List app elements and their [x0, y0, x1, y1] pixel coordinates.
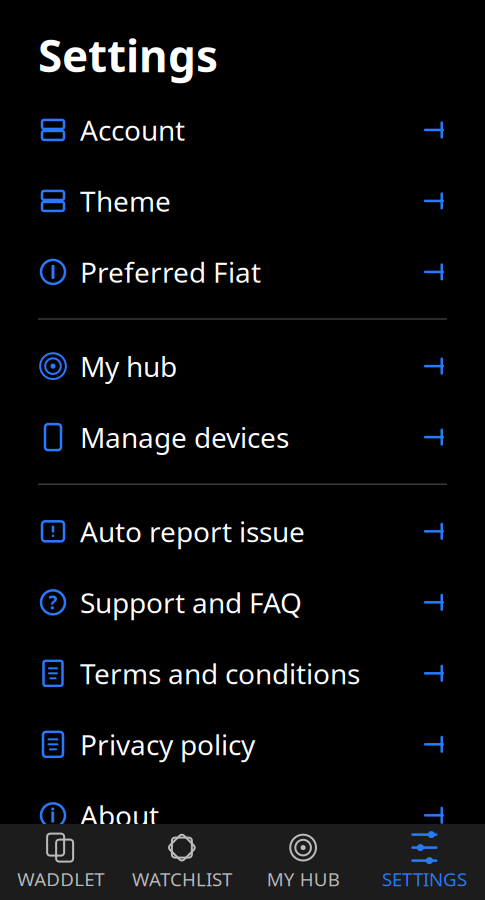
staticText: Theme: [80, 182, 171, 219]
button[interactable]: Theme: [0, 165, 485, 236]
button[interactable]: MY HUB: [242, 829, 364, 895]
staticText: Settings: [38, 26, 218, 84]
staticText: Privacy policy: [80, 726, 255, 763]
button[interactable]: ?: [0, 567, 485, 638]
button[interactable]: SETTINGS: [364, 829, 485, 895]
button[interactable]: Terms and conditions: [0, 638, 485, 709]
staticText: WADDLET: [17, 867, 104, 891]
staticText: Manage devices: [80, 418, 289, 456]
staticText: Support and FAQ: [80, 584, 302, 621]
staticText: i: [50, 803, 56, 828]
button[interactable]: Preferred Fiat: [0, 236, 485, 307]
button[interactable]: Manage devices: [0, 402, 485, 473]
button[interactable]: Account: [0, 94, 485, 165]
button[interactable]: Privacy policy: [0, 709, 485, 780]
staticText: Terms and conditions: [80, 655, 360, 692]
staticText: MY HUB: [267, 867, 340, 891]
button[interactable]: My hub: [0, 331, 485, 402]
staticText: Auto report issue: [80, 513, 305, 550]
button[interactable]: i: [0, 780, 485, 851]
staticText: Preferred Fiat: [80, 253, 261, 290]
button[interactable]: WADDLET: [0, 829, 121, 895]
staticText: WATCHLIST: [132, 867, 232, 891]
staticText: SETTINGS: [382, 867, 467, 891]
button[interactable]: WATCHLIST: [121, 829, 242, 895]
staticText: My hub: [80, 347, 177, 385]
staticText: Account: [80, 111, 185, 148]
staticText: About: [80, 797, 159, 834]
staticText: ?: [48, 590, 57, 615]
button[interactable]: Auto report issue: [0, 496, 485, 567]
